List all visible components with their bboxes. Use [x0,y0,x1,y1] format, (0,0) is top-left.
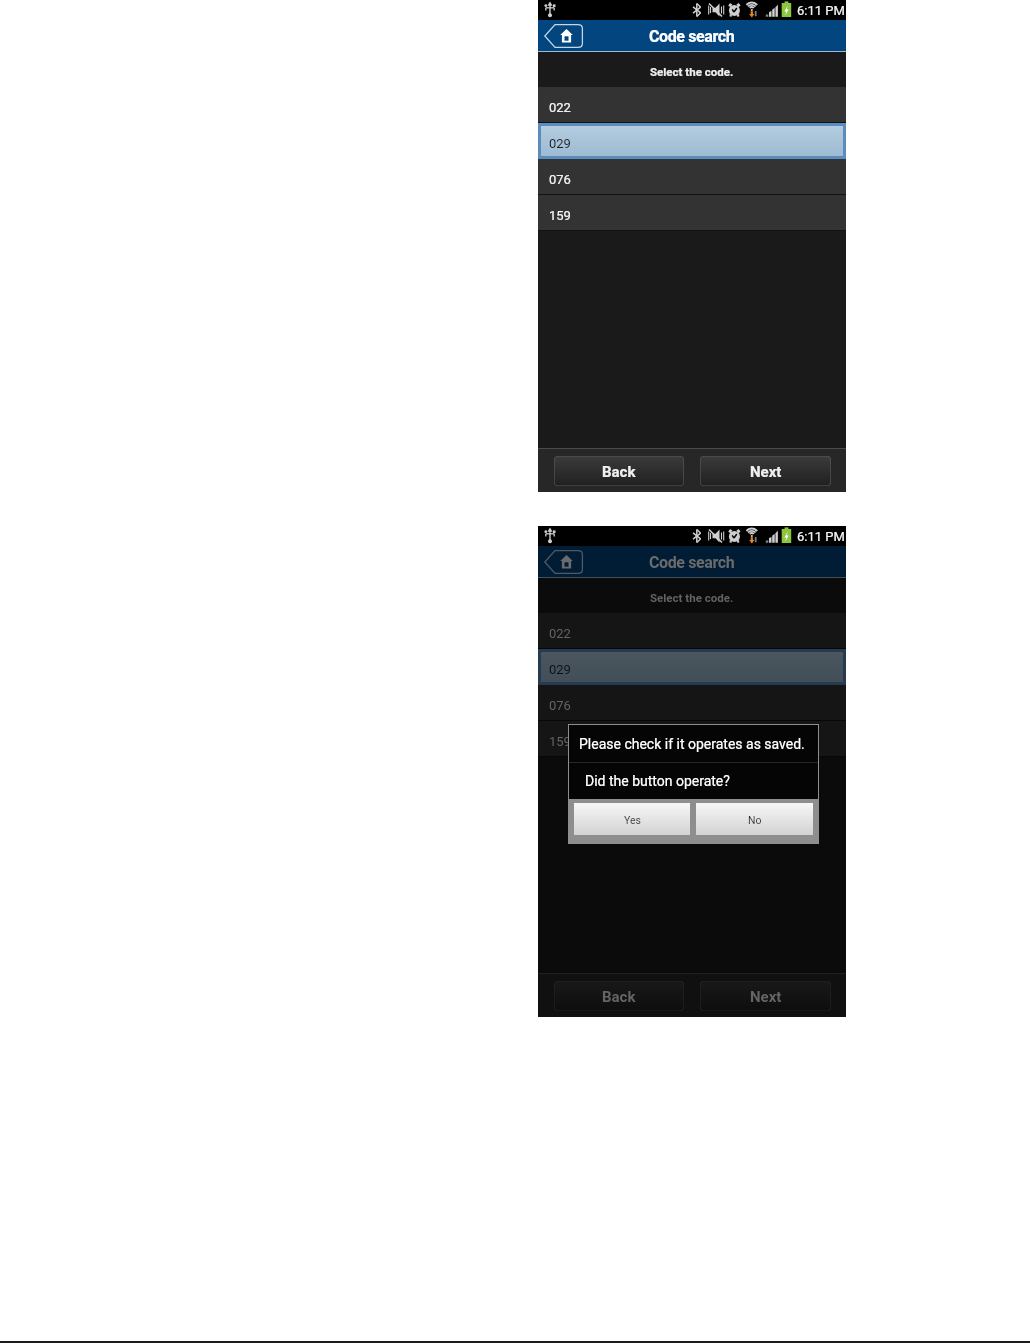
staticText: Yes [624,814,641,826]
staticText: 6:11 PM [797,3,845,18]
button[interactable]: Home [544,550,583,574]
button[interactable]: 159 [538,195,846,231]
staticText: 022 [549,626,571,641]
staticText: Code search [649,27,735,46]
staticText: 159 [549,208,571,223]
button[interactable]: 159 [538,721,846,757]
staticText: 076 [549,698,571,713]
staticText: Back [602,988,636,1006]
staticText: Please check if it operates as saved. [579,736,805,752]
staticText: 029 [549,136,571,151]
button[interactable]: Back [554,456,684,486]
staticText: 076 [549,172,571,187]
staticText: Next [750,463,782,481]
staticText: Back [602,463,636,481]
staticText: Did the button operate? [585,773,730,789]
staticText: 6:11 PM [797,529,845,544]
staticText: Select the code. [650,65,734,78]
button[interactable]: 029 [538,649,846,685]
button[interactable]: Next [700,981,831,1011]
staticText: Next [750,988,782,1006]
button[interactable]: 022 [538,87,846,123]
button[interactable]: Next [700,456,831,486]
button[interactable]: 076 [538,685,846,721]
button[interactable]: 029 [538,123,846,159]
button[interactable]: 076 [538,159,846,195]
staticText: Code search [649,553,735,572]
button[interactable]: 022 [538,613,846,649]
button[interactable]: Home [544,24,583,48]
staticText: 029 [549,662,571,677]
button[interactable]: No [696,803,813,835]
button[interactable]: Yes [574,803,690,835]
staticText: 159 [549,734,571,749]
staticText: Select the code. [650,591,734,604]
staticText: No [748,814,762,826]
button[interactable]: Back [554,981,684,1011]
staticText: 022 [549,100,571,115]
